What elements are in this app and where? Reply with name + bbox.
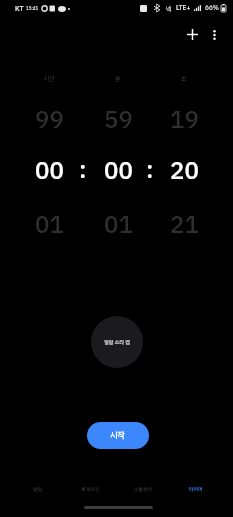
staticText: 20 [170, 153, 199, 183]
button[interactable]: 스톱워치 [116, 479, 169, 501]
staticText: : [146, 152, 154, 188]
staticText: 스톱워치 [134, 486, 152, 494]
staticText: : [79, 152, 87, 188]
staticText: 넥 [166, 4, 172, 13]
button[interactable]: More options [201, 21, 228, 48]
staticText: 세계시각 [81, 486, 99, 494]
staticText: 분 [115, 74, 121, 84]
staticText: 01 [104, 207, 133, 237]
button[interactable]: 타이머 [169, 479, 222, 501]
button[interactable]: Add preset timer [179, 21, 206, 48]
staticText: 66% [205, 3, 219, 13]
button[interactable]: Minutes [85, 92, 151, 250]
staticText: 99 [35, 102, 64, 132]
staticText: 알람 소리 켬 [104, 338, 130, 346]
staticText: 19 [170, 102, 199, 132]
staticText: 15:41 [26, 5, 39, 12]
staticText: 알람 [33, 486, 42, 494]
staticText: 시작 [110, 429, 126, 442]
staticText: 01 [35, 207, 64, 237]
staticText: 00 [35, 153, 64, 183]
staticText: 00 [104, 153, 133, 183]
button[interactable]: 시작 [87, 422, 149, 449]
button[interactable]: 알람 소리 켬 [91, 316, 143, 368]
staticText: KT [15, 3, 24, 14]
staticText: 타이머 [189, 486, 203, 494]
staticText: 초 [181, 74, 187, 84]
staticText: 59 [104, 102, 133, 132]
button[interactable]: 세계시각 [63, 479, 116, 501]
staticText: LTE+ [176, 3, 191, 13]
button[interactable]: 알람 [11, 479, 63, 501]
staticText: 21 [170, 207, 199, 237]
button[interactable]: Seconds [151, 92, 217, 250]
button[interactable]: Hours [16, 92, 82, 250]
staticText: 시간 [43, 74, 55, 84]
